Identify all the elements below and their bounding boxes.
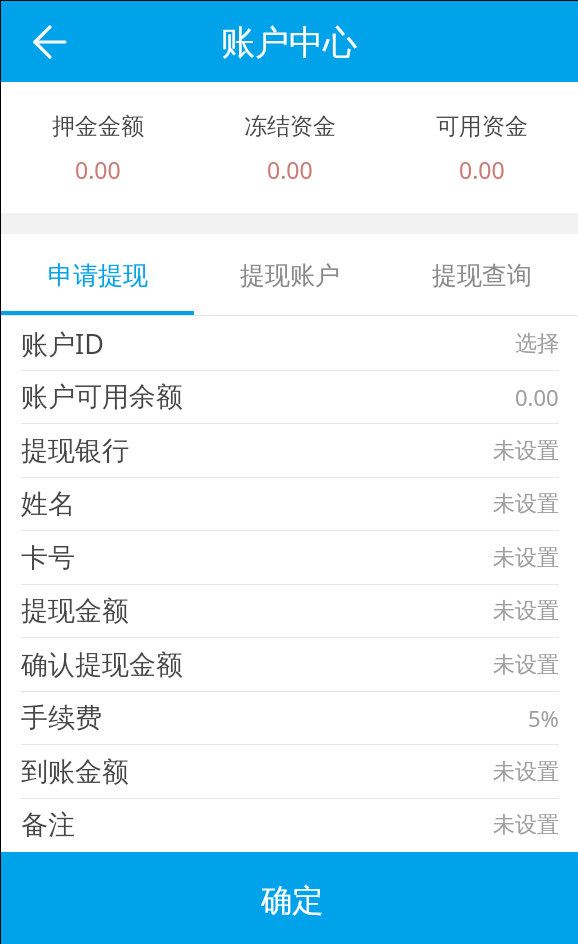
staticText: 提现银行: [21, 434, 129, 468]
button[interactable]: 手续费: [1, 692, 578, 745]
staticText: 选择: [515, 330, 559, 358]
staticText: 提现查询: [432, 260, 532, 291]
button[interactable]: 提现账户: [194, 234, 386, 316]
staticText: 冻结资金: [244, 112, 336, 141]
button[interactable]: 确定: [1, 852, 578, 944]
staticText: 未设置: [493, 597, 559, 625]
staticText: 未设置: [493, 544, 559, 572]
button[interactable]: 申请提现: [1, 234, 194, 316]
staticText: 手续费: [21, 701, 102, 735]
staticText: 到账金额: [21, 755, 129, 789]
staticText: 5%: [528, 703, 559, 733]
staticText: 可用资金: [436, 112, 528, 141]
button[interactable]: 备注: [1, 799, 578, 852]
button[interactable]: 提现银行: [1, 425, 578, 478]
staticText: 未设置: [493, 490, 559, 518]
staticText: 姓名: [21, 487, 75, 521]
button[interactable]: 可用资金: [386, 82, 578, 213]
button[interactable]: 账户可用余额: [1, 371, 578, 424]
button[interactable]: 到账金额: [1, 746, 578, 799]
button[interactable]: 姓名: [1, 478, 578, 531]
staticText: 提现金额: [21, 594, 129, 628]
staticText: 账户可用余额: [21, 380, 183, 414]
button[interactable]: 确认提现金额: [1, 639, 578, 692]
staticText: 申请提现: [48, 260, 148, 291]
staticText: 确定: [261, 881, 323, 920]
staticText: 卡号: [21, 541, 75, 575]
staticText: 0.00: [515, 382, 559, 412]
staticText: 0.00: [75, 154, 121, 185]
staticText: 备注: [21, 808, 75, 842]
button[interactable]: 卡号: [1, 532, 578, 585]
staticText: 未设置: [493, 758, 559, 786]
button[interactable]: 提现金额: [1, 585, 578, 638]
staticText: 账户ID: [21, 325, 104, 362]
button[interactable]: 提现查询: [386, 234, 578, 316]
staticText: 提现账户: [240, 260, 340, 291]
button[interactable]: 冻结资金: [194, 82, 386, 213]
staticText: 0.00: [459, 154, 505, 185]
button[interactable]: 押金金额: [1, 82, 194, 213]
button[interactable]: 账户ID: [1, 318, 578, 371]
staticText: 押金金额: [52, 112, 144, 141]
staticText: 确认提现金额: [21, 648, 183, 682]
button[interactable]: Back: [9, 1, 90, 82]
staticText: 账户中心: [221, 21, 357, 64]
staticText: 0.00: [267, 154, 313, 185]
staticText: 未设置: [493, 811, 559, 839]
staticText: 未设置: [493, 437, 559, 465]
staticText: 未设置: [493, 651, 559, 679]
